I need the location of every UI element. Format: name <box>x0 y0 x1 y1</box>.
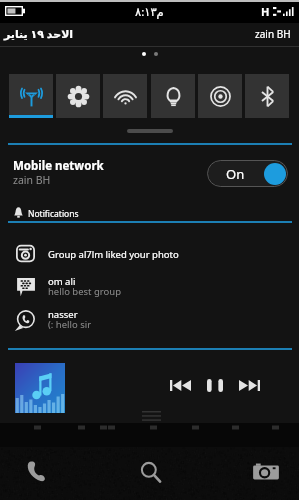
staticText: م٨:١٣ <box>135 4 164 20</box>
staticText: zain BH <box>255 27 291 41</box>
button[interactable]: Phone <box>25 460 48 482</box>
button[interactable]: Camera <box>252 461 280 482</box>
staticText: hello best group <box>48 285 122 298</box>
staticText: Notifications <box>28 208 79 220</box>
button[interactable]: Flashlight <box>151 74 195 118</box>
button[interactable]: om ali <box>0 272 299 305</box>
button[interactable]: nasser <box>0 305 299 338</box>
staticText: On <box>226 165 245 183</box>
button[interactable]: Search <box>139 460 163 484</box>
staticText: Mobile network <box>13 158 104 174</box>
staticText: nasser <box>48 308 78 321</box>
button[interactable] <box>15 363 65 413</box>
button[interactable]: Location <box>198 74 242 118</box>
button[interactable]: Pause <box>207 379 223 392</box>
button[interactable]: Settings <box>56 74 100 118</box>
staticText: الاحد ١٩ يناير <box>4 26 74 41</box>
button[interactable]: Mobile network <box>0 148 299 196</box>
staticText: (: hello sir <box>48 318 92 331</box>
button[interactable]: On <box>207 160 288 187</box>
button[interactable]: Bluetooth <box>245 74 289 118</box>
button[interactable]: Next track <box>239 380 260 391</box>
button[interactable]: Mobile data <box>9 74 53 118</box>
staticText: om ali <box>48 275 76 288</box>
staticText: zain BH <box>13 173 51 187</box>
button[interactable]: Previous track <box>170 380 191 391</box>
staticText: H <box>261 4 270 19</box>
button[interactable]: Group al7lm liked your photo <box>0 240 299 270</box>
button[interactable]: Wi-Fi <box>103 74 147 118</box>
staticText: Group al7lm liked your photo <box>48 248 179 261</box>
